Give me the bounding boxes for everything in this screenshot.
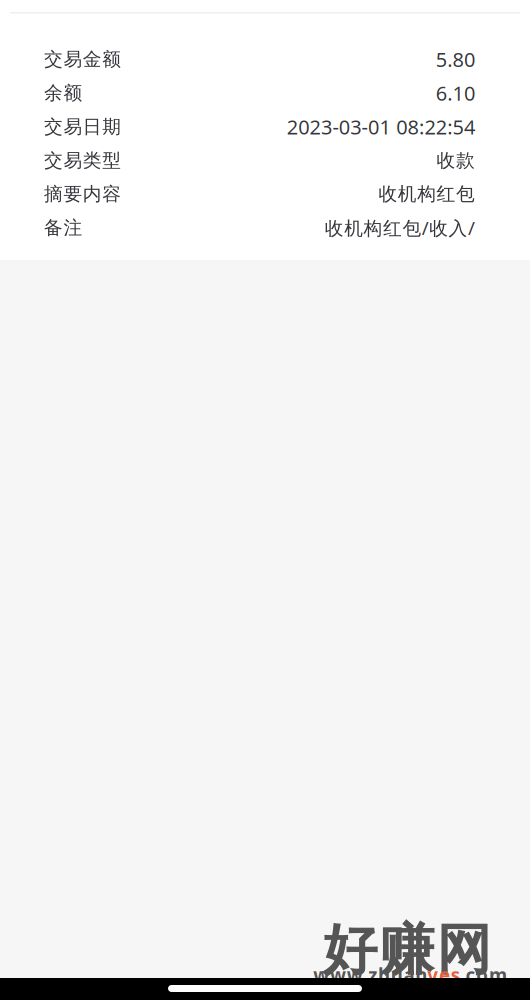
staticText: 收机构红包/收入/ <box>325 215 475 240</box>
staticText: .com <box>460 962 507 988</box>
staticText: 交易金额 <box>44 48 121 71</box>
staticText: www.zhuan <box>313 962 427 988</box>
button[interactable]: 摘要内容 <box>0 177 530 211</box>
button[interactable]: 交易金额 <box>0 42 530 76</box>
button[interactable]: 交易类型 <box>0 144 530 177</box>
staticText: 收款 <box>437 149 475 172</box>
staticText: 好赚网 <box>322 916 491 984</box>
staticText: yes <box>427 962 460 988</box>
staticText: 摘要内容 <box>44 182 121 206</box>
staticText: 2023-03-01 08:22:54 <box>287 113 475 140</box>
staticText: 5.80 <box>436 46 475 73</box>
button[interactable]: 交易日期 <box>0 110 530 144</box>
staticText: 交易日期 <box>44 115 121 138</box>
staticText: 收机构红包 <box>378 182 475 206</box>
button[interactable]: 备注 <box>0 211 530 245</box>
staticText: 6.10 <box>436 79 475 107</box>
staticText: 备注 <box>44 216 82 240</box>
button[interactable]: 余额 <box>0 76 530 110</box>
staticText: 余额 <box>44 81 82 105</box>
staticText: 交易类型 <box>44 149 121 172</box>
